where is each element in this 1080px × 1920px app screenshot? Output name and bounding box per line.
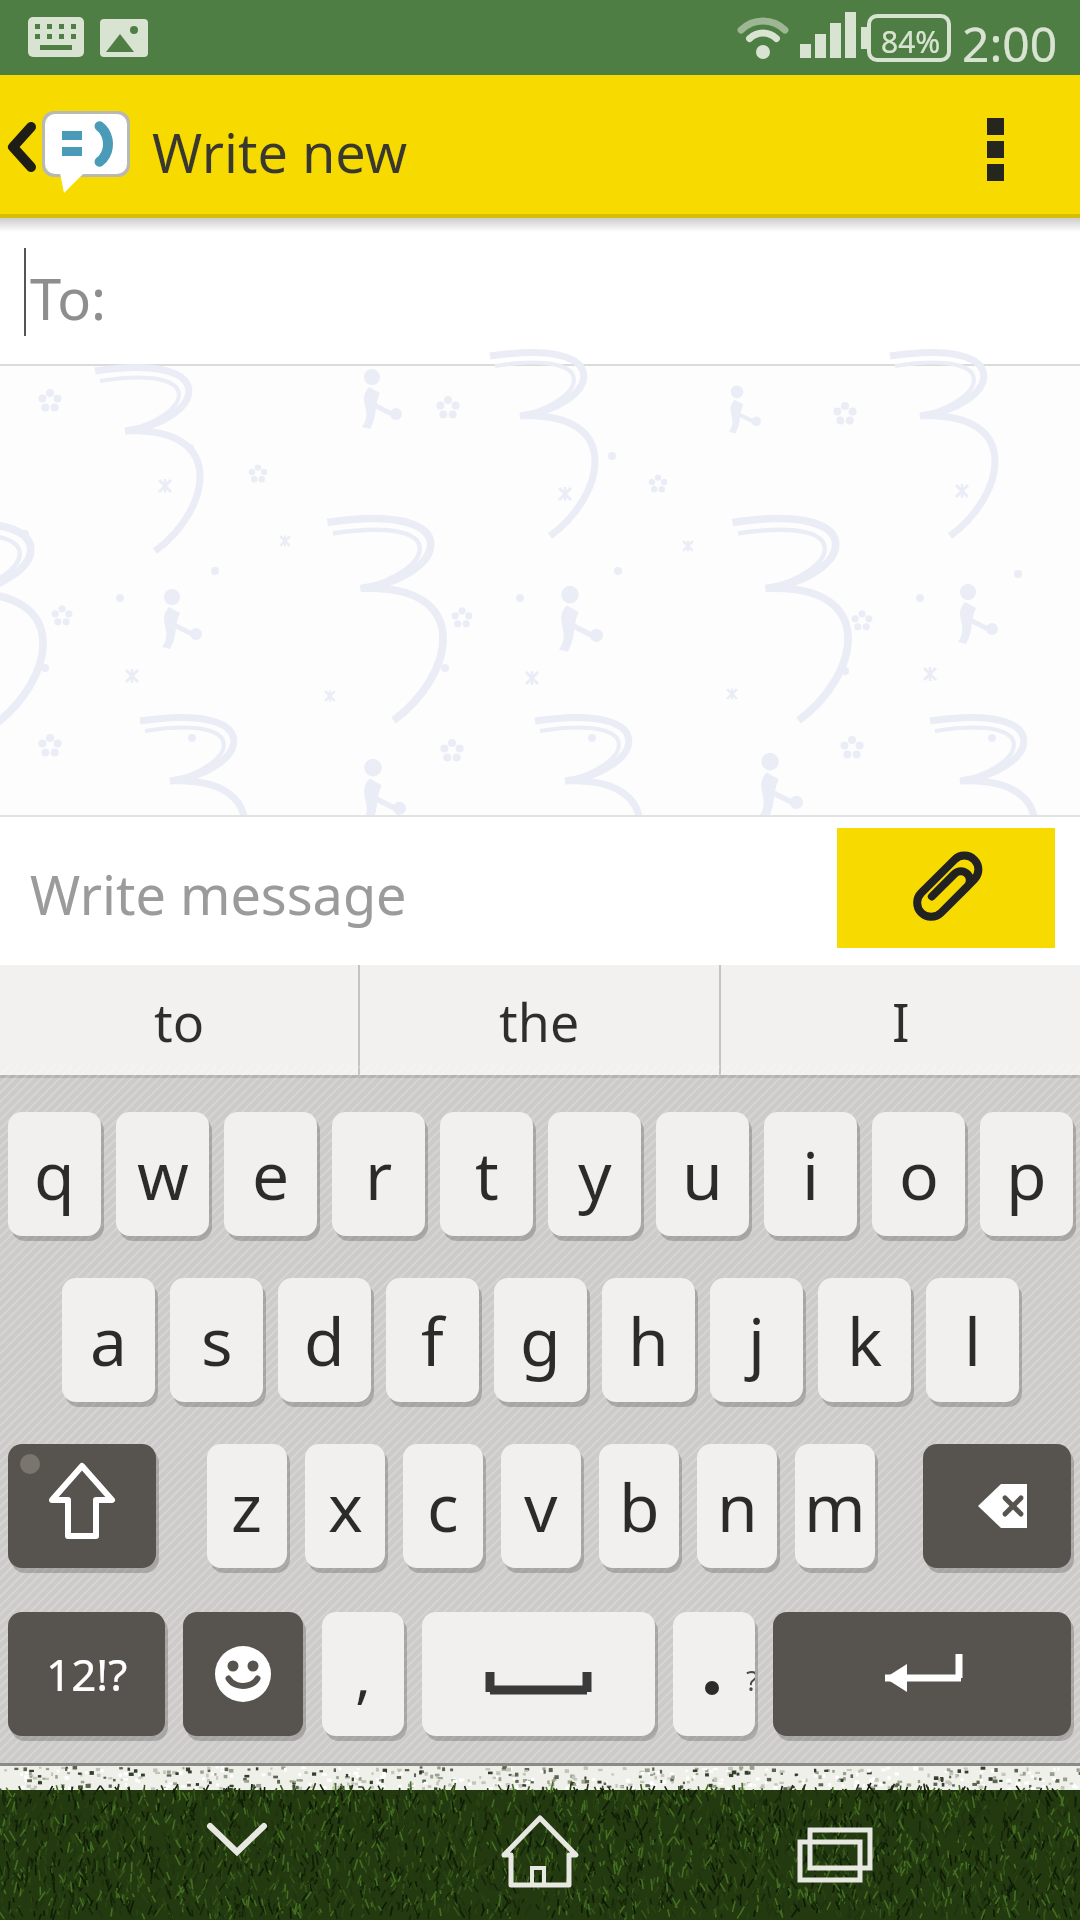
staticText: a <box>90 1295 128 1385</box>
staticText: n <box>717 1461 758 1551</box>
button[interactable]: r <box>332 1112 425 1236</box>
staticText: o <box>899 1129 939 1219</box>
staticText: q <box>34 1129 75 1219</box>
button[interactable]: e <box>224 1112 317 1236</box>
staticText: i <box>802 1129 820 1219</box>
button[interactable]: h <box>602 1278 695 1402</box>
staticText: to <box>154 986 205 1057</box>
staticText: t <box>475 1129 499 1219</box>
button[interactable]: d <box>278 1278 371 1402</box>
button[interactable] <box>837 828 1055 948</box>
staticText: p <box>1006 1129 1047 1219</box>
staticText: l <box>964 1295 982 1385</box>
staticText: 2:00 <box>962 11 1058 76</box>
button[interactable] <box>183 1612 303 1736</box>
button[interactable] <box>422 1612 655 1736</box>
button[interactable]: s <box>170 1278 263 1402</box>
staticText: r <box>365 1129 393 1219</box>
staticText: 84% <box>881 21 941 62</box>
button[interactable]: y <box>548 1112 641 1236</box>
button[interactable]: f <box>386 1278 479 1402</box>
staticText: w <box>137 1129 189 1219</box>
button[interactable]: a <box>62 1278 155 1402</box>
staticText: j <box>748 1295 766 1385</box>
button[interactable] <box>130 1790 345 1920</box>
staticText: Write message <box>30 857 407 931</box>
button[interactable] <box>735 1790 950 1920</box>
staticText: k <box>847 1295 883 1385</box>
staticText: Write new <box>152 115 408 189</box>
staticText: To: <box>30 260 107 336</box>
button[interactable]: Write message <box>0 817 1080 965</box>
button[interactable]: p <box>980 1112 1073 1236</box>
button[interactable] <box>0 75 145 218</box>
button[interactable]: k <box>818 1278 911 1402</box>
staticText: x <box>328 1461 363 1551</box>
button[interactable]: o <box>872 1112 965 1236</box>
button[interactable]: v <box>501 1444 581 1568</box>
button[interactable]: x <box>305 1444 385 1568</box>
staticText: v <box>524 1461 558 1551</box>
staticText: f <box>421 1295 444 1385</box>
button[interactable] <box>960 100 1035 195</box>
staticText: b <box>619 1461 660 1551</box>
staticText: h <box>628 1295 669 1385</box>
button[interactable]: ?! <box>673 1612 755 1736</box>
button[interactable]: i <box>764 1112 857 1236</box>
staticText: the <box>499 986 580 1057</box>
button[interactable]: c <box>403 1444 483 1568</box>
staticText: I <box>892 986 910 1057</box>
button[interactable]: , <box>322 1612 404 1736</box>
staticText: 12!? <box>46 1644 128 1704</box>
button[interactable]: To: <box>0 218 1080 366</box>
button[interactable]: l <box>926 1278 1019 1402</box>
button[interactable]: n <box>697 1444 777 1568</box>
button[interactable]: z <box>207 1444 287 1568</box>
button[interactable]: j <box>710 1278 803 1402</box>
button[interactable] <box>8 1444 156 1568</box>
staticText: ?! <box>746 1661 755 1699</box>
staticText: e <box>252 1129 290 1219</box>
button[interactable] <box>773 1612 1071 1736</box>
button[interactable]: I <box>721 965 1080 1078</box>
staticText: c <box>427 1461 459 1551</box>
staticText: d <box>304 1295 345 1385</box>
staticText: y <box>578 1129 612 1219</box>
button[interactable]: w <box>116 1112 209 1236</box>
staticText: , <box>355 1633 372 1715</box>
button[interactable]: t <box>440 1112 533 1236</box>
button[interactable]: u <box>656 1112 749 1236</box>
button[interactable]: the <box>360 965 719 1078</box>
button[interactable]: b <box>599 1444 679 1568</box>
staticText: s <box>201 1295 233 1385</box>
staticText: z <box>231 1461 263 1551</box>
button[interactable]: m <box>795 1444 875 1568</box>
staticText: u <box>682 1129 723 1219</box>
button[interactable]: 12!? <box>8 1612 165 1736</box>
staticText: g <box>520 1295 561 1385</box>
staticText: m <box>804 1461 866 1551</box>
button[interactable]: g <box>494 1278 587 1402</box>
button[interactable]: to <box>0 965 358 1078</box>
button[interactable] <box>432 1790 647 1920</box>
button[interactable] <box>923 1444 1071 1568</box>
button[interactable]: q <box>8 1112 101 1236</box>
